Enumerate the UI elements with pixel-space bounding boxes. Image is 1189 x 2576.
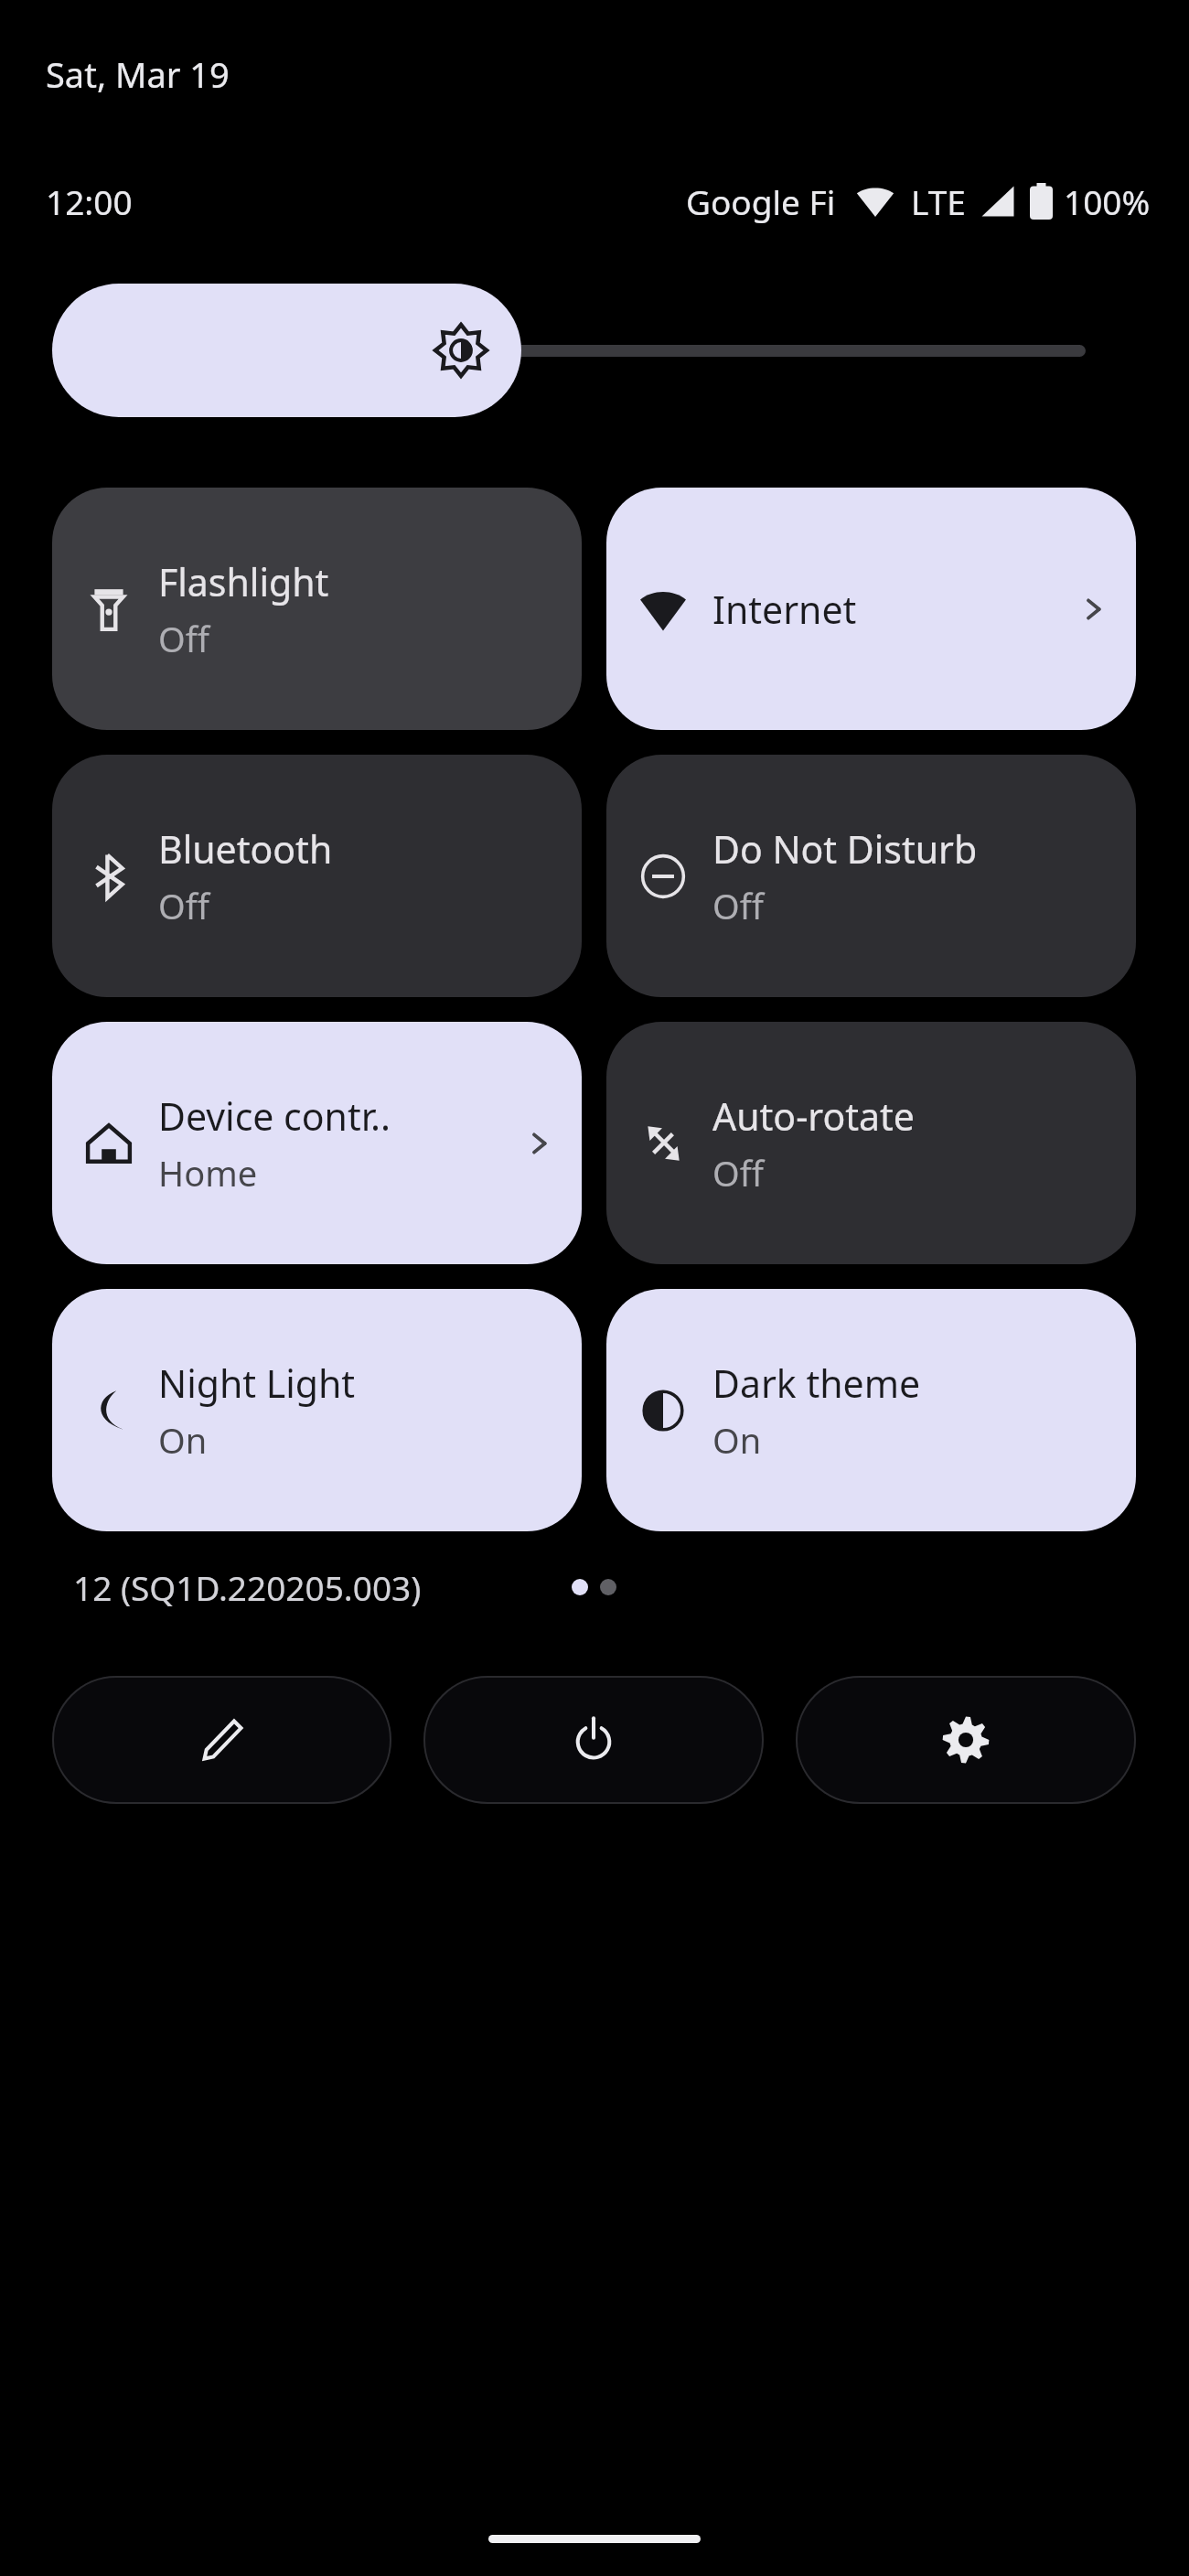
staticText: 12:00	[46, 178, 133, 224]
button[interactable]: Power	[423, 1676, 764, 1804]
staticText: Night Light	[158, 1358, 356, 1409]
staticText: Internet	[712, 584, 857, 635]
button[interactable]: Auto-rotate	[606, 1022, 1136, 1264]
button[interactable]: Night Light	[52, 1289, 582, 1531]
button[interactable]: Flashlight	[52, 488, 582, 730]
staticText: Off	[712, 882, 764, 929]
staticText: Off	[158, 615, 209, 662]
button[interactable]: Settings	[796, 1676, 1136, 1804]
staticText: Device contr..	[158, 1090, 391, 1142]
button[interactable]: Internet	[606, 488, 1136, 730]
staticText: Off	[158, 882, 209, 929]
staticText: Google Fi	[686, 178, 836, 224]
staticText: Do Not Disturb	[712, 823, 978, 875]
staticText: On	[158, 1416, 208, 1464]
staticText: LTE	[911, 178, 966, 224]
button[interactable]	[52, 284, 1136, 417]
staticText: 100%	[1064, 178, 1151, 224]
staticText: On	[712, 1416, 762, 1464]
staticText: Bluetooth	[158, 823, 333, 875]
staticText: 12 (SQ1D.220205.003)	[73, 1564, 422, 1610]
staticText: Off	[712, 1149, 764, 1197]
staticText: Flashlight	[158, 556, 329, 607]
button[interactable]: Do Not Disturb	[606, 755, 1136, 997]
staticText: Dark theme	[712, 1358, 921, 1409]
staticText: Home	[158, 1149, 258, 1197]
staticText: Auto-rotate	[712, 1090, 915, 1142]
button[interactable]: Bluetooth	[52, 755, 582, 997]
staticText: Sat, Mar 19	[46, 50, 230, 98]
button[interactable]: Edit	[52, 1676, 391, 1804]
button[interactable]: Device contr..	[52, 1022, 582, 1264]
button[interactable]: Dark theme	[606, 1289, 1136, 1531]
